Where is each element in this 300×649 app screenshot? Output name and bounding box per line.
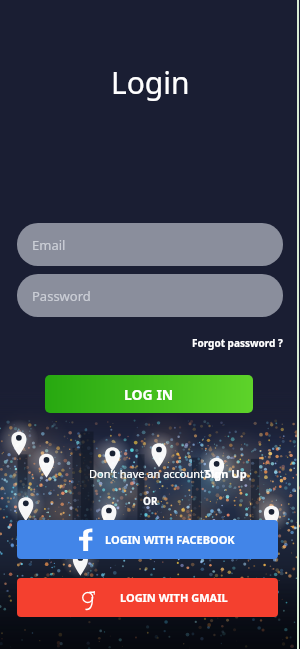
button[interactable]: Email (17, 223, 283, 266)
button[interactable]: Password (17, 274, 283, 317)
button[interactable]: Forgot password ? (160, 333, 283, 353)
staticText: OR (143, 494, 158, 508)
staticText: LOGIN WITH GMAIL (120, 590, 228, 605)
button[interactable]: Facebook (17, 520, 278, 559)
staticText: Login (111, 62, 190, 103)
staticText: Sign Up (205, 466, 247, 481)
staticText: Forgot password ? (192, 336, 283, 350)
staticText: Don't have an account? (89, 466, 212, 481)
button[interactable]: Google (17, 578, 278, 617)
staticText: Password (32, 287, 91, 305)
staticText: LOG IN (124, 385, 174, 404)
other: Google (76, 585, 101, 610)
button[interactable]: LOG IN (45, 375, 253, 413)
staticText: LOGIN WITH FACEBOOK (105, 532, 235, 547)
other: Facebook (74, 528, 97, 551)
button[interactable]: Don't have an account? (89, 466, 212, 481)
staticText: Email (32, 236, 66, 254)
